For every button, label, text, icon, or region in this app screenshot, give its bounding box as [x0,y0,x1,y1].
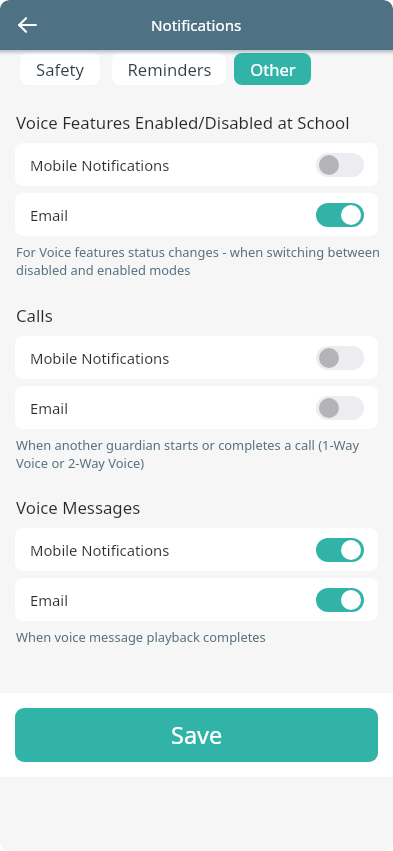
staticText: Calls [16,304,53,327]
button[interactable]: Reminders [112,53,226,85]
button[interactable]: Safety [20,53,100,85]
button[interactable]: Mobile Notifications [15,528,378,571]
staticText: Voice Features Enabled/Disabled at Schoo… [16,111,350,134]
staticText: Mobile Notifications [30,348,170,368]
button[interactable]: Toggle off [316,153,364,177]
staticText: For Voice features status changes - when… [16,243,383,279]
staticText: Email [30,590,68,610]
staticText: When another guardian starts or complete… [16,436,383,472]
staticText: Safety [36,58,84,81]
staticText: Email [30,205,68,225]
button[interactable]: Mobile Notifications [15,143,378,186]
staticText: Notifications [151,15,242,36]
staticText: Mobile Notifications [30,540,170,560]
staticText: Voice Messages [16,496,141,519]
button[interactable]: Mobile Notifications [15,336,378,379]
staticText: Save [171,719,223,751]
staticText: Reminders [127,58,212,81]
staticText: Mobile Notifications [30,155,170,175]
button[interactable]: Toggle off [316,346,364,370]
button[interactable]: Email [15,578,378,621]
button[interactable]: Toggle on [316,538,364,562]
button[interactable]: Toggle on [316,203,364,227]
button[interactable]: Back [8,5,48,45]
button[interactable]: Save [15,708,378,762]
button[interactable]: Email [15,386,378,429]
button[interactable]: Toggle on [316,588,364,612]
button[interactable]: Other [234,53,311,85]
staticText: Other [250,58,296,81]
staticText: Email [30,398,68,418]
staticText: When voice message playback completes [16,628,266,646]
button[interactable]: Email [15,193,378,236]
button[interactable]: Toggle off [316,396,364,420]
